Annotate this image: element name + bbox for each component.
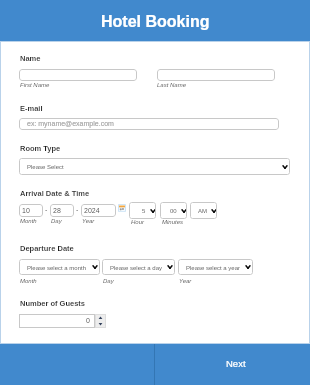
button[interactable]: 0 [19,314,95,328]
button[interactable]: AM [190,202,217,219]
staticText: - [76,206,79,214]
staticText: Month [20,218,37,225]
button[interactable]: Change number of guests [95,314,106,328]
staticText: Name [20,54,41,62]
staticText: - [45,206,48,214]
staticText: Please select a month [27,265,87,272]
staticText: Year [82,218,95,225]
staticText: Last Name [157,82,187,89]
button[interactable]: Open date picker [118,204,126,212]
staticText: Hotel Booking [101,13,210,31]
staticText: Day [103,278,114,285]
staticText: Year [179,278,192,285]
staticText: Please Select [27,164,64,171]
staticText: ex: myname@example.com [27,120,114,128]
staticText: Please select a day [110,265,163,272]
staticText: Room Type [20,144,61,152]
button[interactable]: 2024 [81,204,116,217]
staticText: Hour [131,219,145,226]
button[interactable]: 5 [129,202,156,219]
staticText: 0 [86,317,90,325]
staticText: Please select a year [186,265,241,272]
staticText: Day [51,218,62,225]
staticText: Number of Guests [20,299,86,307]
button[interactable] [157,69,275,81]
staticText: E-mail [20,104,43,112]
button[interactable]: 00 [160,202,187,219]
button[interactable] [19,69,137,81]
staticText: First Name [20,82,50,89]
staticText: Month [20,278,37,285]
staticText: AM [198,208,207,215]
staticText: 5 [142,208,146,215]
staticText: Minutes [162,219,184,226]
button[interactable]: 28 [50,204,74,217]
button[interactable]: Please select a year [178,259,253,275]
button[interactable]: 10 [19,204,43,217]
staticText: Next [226,358,246,369]
staticText: 00 [170,208,177,215]
button[interactable]: Next [155,344,310,385]
staticText: 28 [53,207,61,215]
button[interactable]: Please Select [19,158,290,175]
staticText: 2024 [84,207,100,215]
staticText: 10 [22,207,30,215]
button[interactable]: Please select a month [19,259,100,275]
staticText: Arrival Date & Time [20,189,90,197]
staticText: Departure Date [20,244,74,252]
button[interactable]: Please select a day [102,259,175,275]
button[interactable]: ex: myname@example.com [19,118,279,130]
